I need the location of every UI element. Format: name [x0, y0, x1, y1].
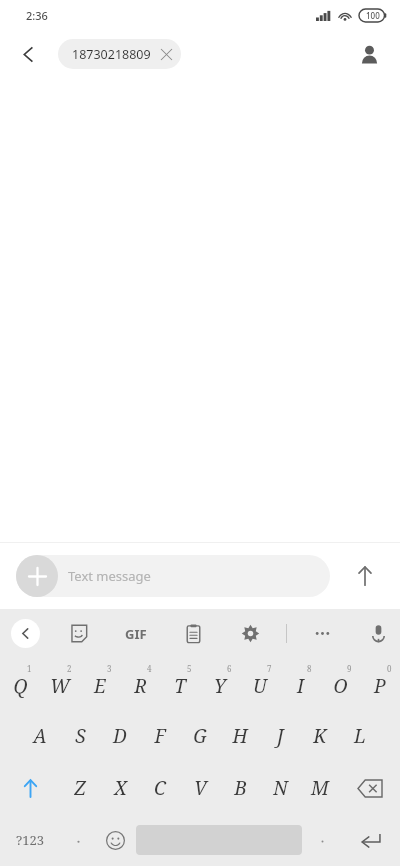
button[interactable]: K	[300, 710, 340, 762]
staticText: V	[194, 775, 207, 801]
button[interactable]: 4	[120, 658, 160, 710]
staticText: B	[234, 775, 247, 801]
staticText: X	[114, 775, 127, 801]
button[interactable]: Attach	[16, 555, 58, 597]
button[interactable]: X	[100, 762, 140, 814]
staticText: 3	[107, 663, 112, 674]
staticText: P	[374, 673, 386, 699]
staticText: H	[232, 723, 248, 749]
staticText: A	[33, 723, 47, 749]
button[interactable]: G	[180, 710, 220, 762]
button[interactable]: Emoji	[97, 814, 134, 866]
button[interactable]: M	[300, 762, 340, 814]
button[interactable]: Comma	[60, 814, 97, 866]
button[interactable]: Shift	[0, 762, 60, 814]
button[interactable]: A	[20, 710, 60, 762]
staticText: Y	[214, 673, 226, 699]
staticText: R	[134, 673, 147, 699]
staticText: J	[277, 723, 284, 749]
button[interactable]: Settings	[231, 609, 269, 658]
staticText: Z	[74, 775, 86, 801]
button[interactable]: D	[100, 710, 140, 762]
staticText: GIF	[125, 625, 147, 643]
staticText: C	[154, 775, 166, 801]
staticText: 100	[366, 10, 380, 21]
staticText: L	[354, 723, 366, 749]
button[interactable]: H	[220, 710, 260, 762]
button[interactable]: 6	[200, 658, 240, 710]
staticText: ?123	[16, 831, 44, 849]
staticText: Text message	[68, 567, 151, 585]
staticText: E	[94, 673, 106, 699]
staticText: 6	[227, 663, 232, 674]
staticText: I	[297, 673, 304, 699]
button[interactable]: Send	[344, 555, 386, 597]
button[interactable]: Clipboard	[174, 609, 212, 658]
button[interactable]: Contact details	[350, 35, 388, 73]
button[interactable]: Back	[10, 36, 46, 72]
button[interactable]: 0	[360, 658, 400, 710]
staticText: 0	[387, 663, 392, 674]
staticText: 2:36	[26, 8, 48, 23]
button[interactable]: 1	[0, 658, 40, 710]
button[interactable]: 2	[40, 658, 80, 710]
button[interactable]: Backspace	[340, 762, 400, 814]
button[interactable]: Voice input	[359, 609, 397, 658]
button[interactable]: L	[340, 710, 380, 762]
button[interactable]: More options	[303, 609, 341, 658]
button[interactable]: Z	[60, 762, 100, 814]
staticText: 2	[67, 663, 72, 674]
button[interactable]: S	[60, 710, 100, 762]
button[interactable]: B	[220, 762, 260, 814]
staticText: Q	[13, 673, 28, 699]
staticText: M	[311, 775, 329, 801]
button[interactable]: 5	[160, 658, 200, 710]
staticText: 4	[147, 663, 152, 674]
staticText: 9	[347, 663, 352, 674]
staticText: O	[333, 673, 348, 699]
button[interactable]: N	[260, 762, 300, 814]
button[interactable]: J	[260, 710, 300, 762]
staticText: 1	[27, 663, 32, 674]
button[interactable]: Stickers	[59, 609, 97, 658]
button[interactable]: V	[180, 762, 220, 814]
staticText: 7	[267, 663, 272, 674]
staticText: W	[50, 673, 70, 699]
button[interactable]: C	[140, 762, 180, 814]
staticText: 8	[307, 663, 312, 674]
staticText: S	[75, 723, 86, 749]
staticText: F	[154, 723, 166, 749]
button[interactable]: GIF	[117, 615, 155, 653]
button[interactable]: Expand toolbar	[11, 619, 40, 648]
staticText: U	[253, 673, 267, 699]
button[interactable]: 18730218809	[58, 39, 181, 69]
staticText: G	[193, 723, 207, 749]
button[interactable]: 3	[80, 658, 120, 710]
staticText: K	[313, 723, 327, 749]
button[interactable]: 9	[320, 658, 360, 710]
button[interactable]: Enter	[341, 814, 400, 866]
button[interactable]: 7	[240, 658, 280, 710]
staticText: T	[174, 673, 186, 699]
button[interactable]: Text message	[16, 555, 330, 597]
staticText: N	[273, 775, 288, 801]
button[interactable]: ?123	[0, 814, 60, 866]
button[interactable]: F	[140, 710, 180, 762]
staticText: 5	[187, 663, 192, 674]
staticText: 18730218809	[72, 46, 151, 63]
button[interactable]: 8	[280, 658, 320, 710]
staticText: D	[113, 723, 127, 749]
